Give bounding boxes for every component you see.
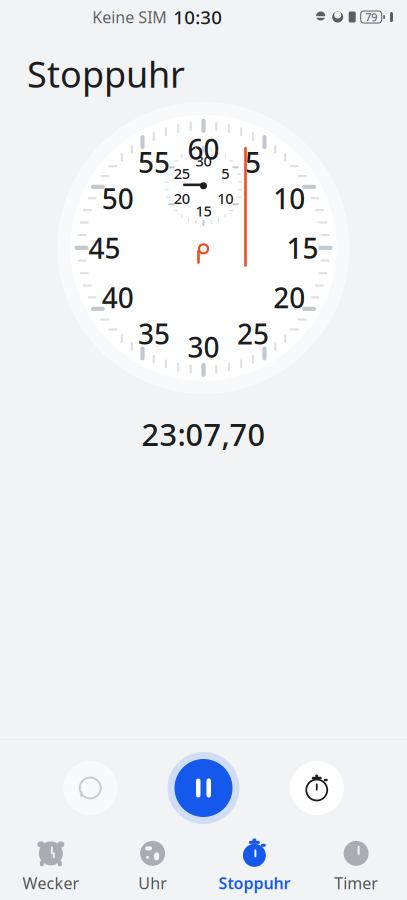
- button[interactable]: Timer: [305, 832, 407, 900]
- staticText: Uhr: [138, 872, 167, 894]
- staticText: 60: [187, 130, 219, 167]
- staticText: Wecker: [22, 872, 79, 894]
- staticText: 25: [174, 164, 190, 183]
- staticText: 50: [102, 180, 134, 217]
- staticText: 20: [174, 189, 190, 208]
- staticText: 10: [273, 180, 305, 217]
- button[interactable]: Stoppuhr: [203, 832, 305, 900]
- staticText: Keine SIM: [92, 6, 167, 28]
- button[interactable]: Uhr: [102, 832, 204, 900]
- staticText: 79: [365, 10, 377, 24]
- staticText: Timer: [334, 872, 378, 894]
- button[interactable]: Runde: [282, 753, 352, 823]
- staticText: 15: [286, 229, 318, 266]
- button[interactable]: Pause: [164, 749, 242, 827]
- staticText: 5: [245, 143, 261, 181]
- staticText: 25: [237, 315, 269, 352]
- staticText: 5: [221, 164, 229, 183]
- staticText: 23:07,70: [141, 414, 265, 454]
- staticText: 55: [138, 143, 170, 181]
- staticText: 30: [187, 328, 219, 365]
- button[interactable]: Zurücksetzen: [55, 753, 125, 823]
- staticText: 10: [217, 189, 233, 208]
- staticText: Stoppuhr: [27, 50, 185, 98]
- button[interactable]: Wecker: [0, 832, 102, 900]
- staticText: Stoppuhr: [218, 872, 290, 894]
- staticText: 30: [195, 151, 211, 171]
- staticText: 35: [138, 315, 170, 352]
- staticText: 45: [88, 229, 120, 266]
- staticText: 40: [102, 279, 134, 316]
- staticText: 10:30: [173, 5, 222, 29]
- staticText: 15: [195, 201, 211, 221]
- staticText: 20: [273, 279, 305, 316]
